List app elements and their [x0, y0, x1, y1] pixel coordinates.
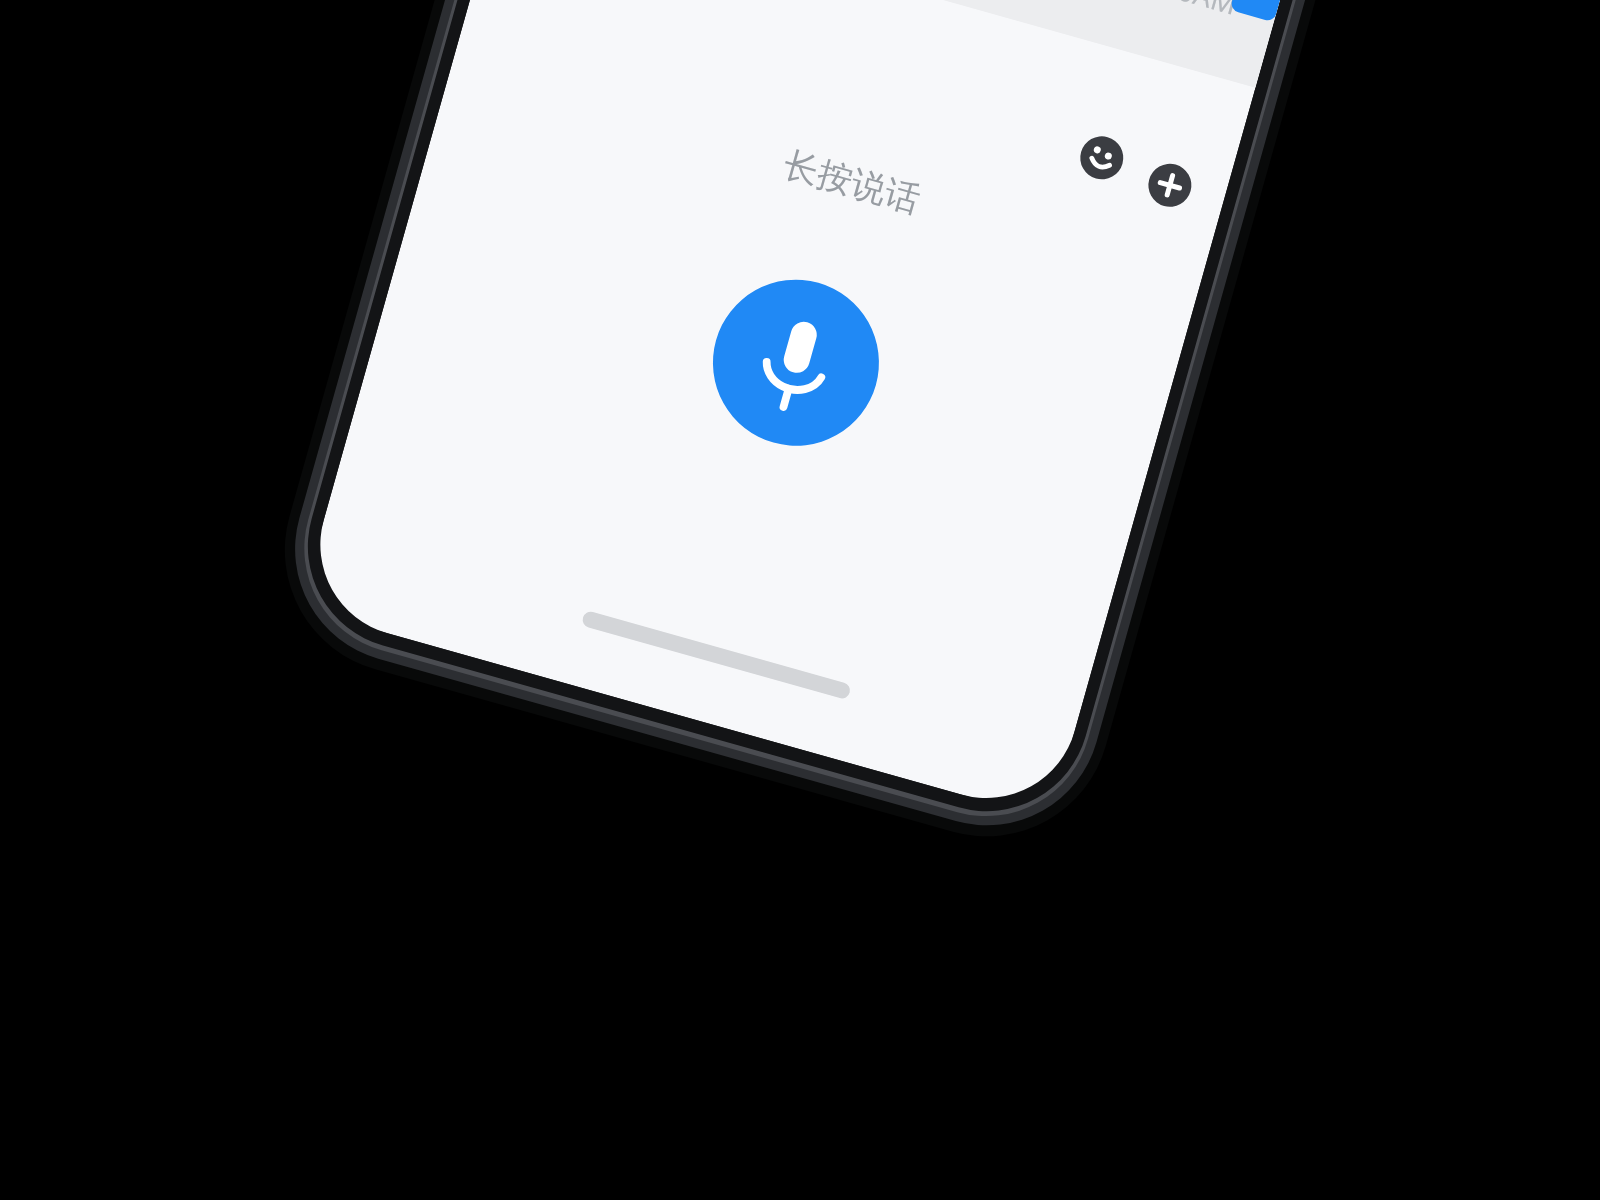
button[interactable]: Voice input screen mockup [0, 0, 1600, 1200]
